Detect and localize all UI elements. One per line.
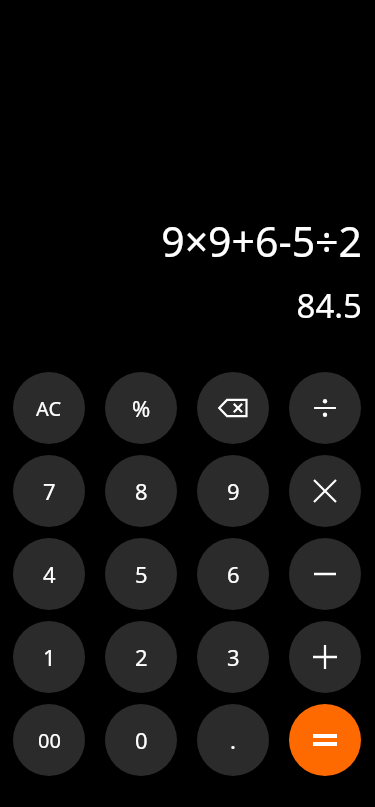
button[interactable]: 2 [105, 621, 177, 693]
staticText: AC [36, 395, 62, 422]
button[interactable]: Minus [289, 538, 361, 610]
button[interactable]: 1 [13, 621, 85, 693]
button[interactable]: 7 [13, 455, 85, 527]
button[interactable]: Equals [289, 704, 361, 776]
button[interactable]: 9 [197, 455, 269, 527]
staticText: 5 [135, 559, 148, 589]
staticText: 0 [135, 725, 148, 755]
staticText: 9 [227, 476, 240, 506]
staticText: 00 [38, 727, 61, 754]
button[interactable]: Backspace [197, 372, 269, 444]
staticText: 2 [135, 642, 148, 672]
staticText: 1 [43, 642, 56, 672]
button[interactable]: 0 [105, 704, 177, 776]
staticText: 6 [227, 559, 240, 589]
button[interactable]: 00 [13, 704, 85, 776]
staticText: . [230, 725, 236, 755]
button[interactable]: Multiply [289, 455, 361, 527]
button[interactable]: Divide [289, 372, 361, 444]
button[interactable]: Plus [289, 621, 361, 693]
staticText: % [132, 393, 151, 423]
button[interactable]: . [197, 704, 269, 776]
staticText: 9×9+6-5÷2 [161, 213, 362, 269]
button[interactable]: 6 [197, 538, 269, 610]
button[interactable]: 4 [13, 538, 85, 610]
staticText: 7 [43, 476, 56, 506]
staticText: 8 [135, 476, 148, 506]
button[interactable]: 5 [105, 538, 177, 610]
staticText: 4 [43, 559, 56, 589]
button[interactable]: 8 [105, 455, 177, 527]
button[interactable]: AC [13, 372, 85, 444]
button[interactable]: 3 [197, 621, 269, 693]
staticText: 3 [227, 642, 240, 672]
staticText: 84.5 [296, 283, 362, 328]
button[interactable]: % [105, 372, 177, 444]
